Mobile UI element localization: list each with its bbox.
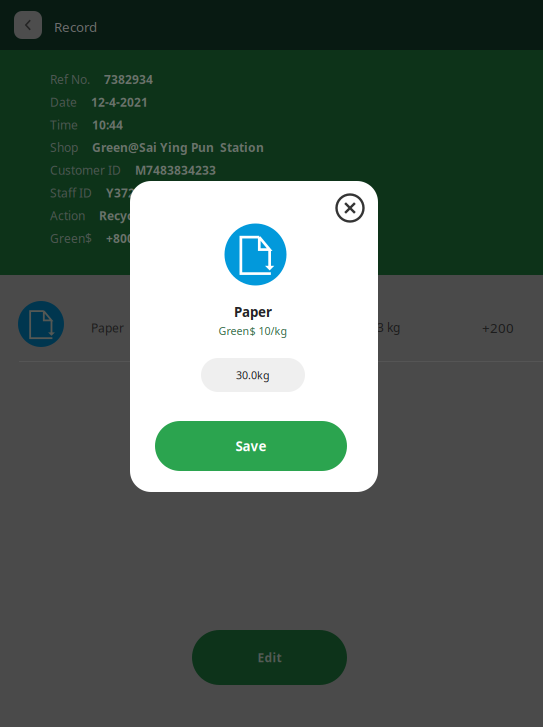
staticText: 12-4-2021: [91, 94, 148, 110]
staticText: Date: [50, 94, 77, 110]
staticText: Record: [54, 18, 97, 36]
button[interactable]: Edit: [192, 630, 347, 685]
staticText: Green@Sai Ying Pun Station: [92, 139, 264, 155]
staticText: M7483834233: [135, 162, 216, 178]
staticText: Edit: [257, 649, 281, 665]
staticText: Staff ID: [50, 185, 92, 201]
staticText: Customer ID: [50, 162, 121, 178]
staticText: 7382934: [104, 71, 153, 87]
staticText: Green$ 10/kg: [218, 324, 287, 338]
staticText: Recycle: [99, 208, 144, 223]
staticText: Action: [50, 208, 85, 223]
staticText: 10:44: [92, 117, 123, 133]
staticText: Save: [235, 437, 266, 455]
button[interactable]: Close: [333, 191, 367, 225]
button[interactable]: Paper: [0, 275, 543, 361]
staticText: Paper: [91, 320, 124, 336]
button[interactable]: Save: [155, 421, 347, 471]
staticText: Ref No.: [50, 71, 90, 87]
staticText: +200: [482, 319, 514, 337]
staticText: Paper: [234, 303, 272, 321]
staticText: +800: [106, 230, 134, 246]
staticText: Y372934: [106, 185, 156, 201]
button[interactable]: Back: [14, 11, 42, 39]
staticText: 30.0kg: [236, 368, 270, 382]
staticText: 30.3 kg: [360, 319, 400, 335]
staticText: Shop: [50, 139, 78, 155]
staticText: Green$: [50, 230, 92, 246]
staticText: Time: [50, 117, 78, 133]
